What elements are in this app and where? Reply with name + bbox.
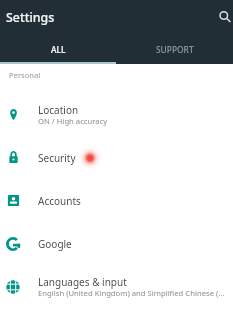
- staticText: ON / High accuracy: [38, 116, 108, 126]
- staticText: ALL: [51, 44, 66, 55]
- button[interactable]: Search: [211, 6, 233, 28]
- button[interactable]: ALL: [0, 36, 116, 62]
- button[interactable]: SUPPORT: [116, 36, 233, 62]
- button[interactable]: Location: [0, 93, 233, 136]
- staticText: Security: [38, 151, 76, 165]
- staticText: English (United Kingdom) and Simplified …: [38, 288, 225, 298]
- staticText: Google: [38, 237, 72, 251]
- staticText: Personal: [9, 70, 41, 80]
- button[interactable]: Languages & input: [0, 265, 233, 308]
- staticText: Languages & input: [38, 275, 127, 289]
- staticText: Location: [38, 103, 79, 117]
- staticText: Settings: [6, 9, 55, 26]
- button[interactable]: Accounts: [0, 179, 233, 222]
- staticText: Accounts: [38, 194, 81, 208]
- button[interactable]: Google: [0, 222, 233, 265]
- staticText: SUPPORT: [156, 44, 194, 55]
- button[interactable]: Security: [0, 136, 233, 179]
